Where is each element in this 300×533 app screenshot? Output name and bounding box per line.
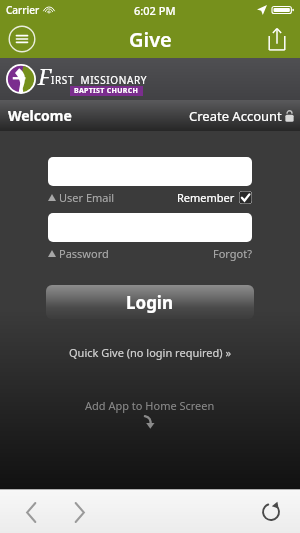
staticText: Password	[59, 246, 109, 261]
button[interactable]: Share	[264, 26, 290, 52]
button[interactable]: Add App to Home Screen	[0, 398, 300, 429]
staticText: F	[38, 61, 51, 91]
button[interactable]: Remember	[177, 190, 252, 205]
button[interactable]: Forward	[66, 499, 92, 525]
button[interactable]: Reload	[256, 497, 286, 527]
button[interactable]: Login	[46, 285, 254, 319]
button[interactable]: Forgot?	[213, 246, 252, 261]
button[interactable]: Back	[18, 499, 44, 525]
staticText: IRST MISSIONARY	[51, 73, 147, 87]
button[interactable]	[48, 213, 252, 242]
button[interactable]: Create Account	[189, 107, 294, 125]
staticText: Remember	[177, 190, 235, 205]
staticText: Login	[126, 291, 174, 314]
staticText: Welcome	[8, 106, 72, 125]
staticText: Give	[129, 26, 172, 53]
button[interactable]: Quick Give (no login required) »	[69, 345, 232, 360]
staticText: 6:02 PM	[134, 3, 176, 18]
staticText: Add App to Home Screen	[85, 398, 215, 413]
staticText: Create Account	[189, 107, 282, 125]
button[interactable]: Menu	[8, 25, 36, 53]
staticText: Carrier	[6, 3, 40, 17]
button[interactable]	[48, 157, 252, 186]
staticText: BAPTIST CHURCH	[74, 86, 139, 96]
staticText: User Email	[59, 190, 115, 205]
